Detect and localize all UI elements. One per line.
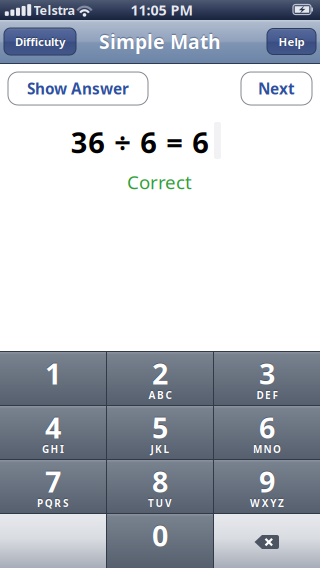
button[interactable]: Show Answer [8, 72, 148, 105]
staticText: DEF [256, 388, 278, 402]
staticText: 4 [45, 408, 61, 447]
staticText: 11:05 PM [130, 0, 193, 20]
staticText: 7 [45, 462, 61, 501]
staticText: 36 ÷ 6 = 6 [71, 122, 209, 162]
staticText: 3 [259, 354, 275, 393]
staticText: ABC [148, 388, 172, 402]
staticText: Telstra [33, 1, 75, 19]
button[interactable]: 4 [0, 406, 106, 459]
staticText: 8 [152, 462, 168, 501]
staticText: Help [278, 34, 304, 49]
button[interactable]: 0 [107, 514, 213, 568]
staticText: TUV [148, 496, 172, 510]
button[interactable]: 3 [214, 352, 320, 405]
staticText: WXYZ [250, 496, 284, 510]
staticText: GHI [42, 442, 64, 456]
staticText: 5 [152, 408, 168, 447]
staticText: Show Answer [27, 78, 129, 99]
staticText: 6 [259, 408, 275, 447]
staticText: 2 [152, 354, 168, 393]
staticText: 9 [259, 462, 275, 501]
staticText: Difficulty [15, 34, 65, 49]
staticText: Next [258, 78, 295, 99]
button[interactable] [0, 514, 106, 568]
staticText: MNO [253, 442, 281, 456]
button[interactable]: 5 [107, 406, 213, 459]
button[interactable]: Difficulty [4, 28, 76, 55]
button[interactable]: 7 [0, 460, 106, 513]
button[interactable]: 2 [107, 352, 213, 405]
staticText: 0 [152, 516, 168, 555]
button[interactable]: 1 [0, 352, 106, 405]
button[interactable]: Help [267, 28, 316, 54]
staticText: PQRS [37, 496, 69, 510]
button[interactable]: 8 [107, 460, 213, 513]
button[interactable] [214, 514, 320, 568]
button[interactable]: 6 [214, 406, 320, 459]
staticText: Correct [127, 169, 192, 195]
staticText: 1 [45, 354, 61, 393]
staticText: Simple Math [99, 28, 221, 55]
button[interactable]: Next [241, 72, 312, 105]
button[interactable]: 9 [214, 460, 320, 513]
staticText: JKL [150, 442, 170, 456]
